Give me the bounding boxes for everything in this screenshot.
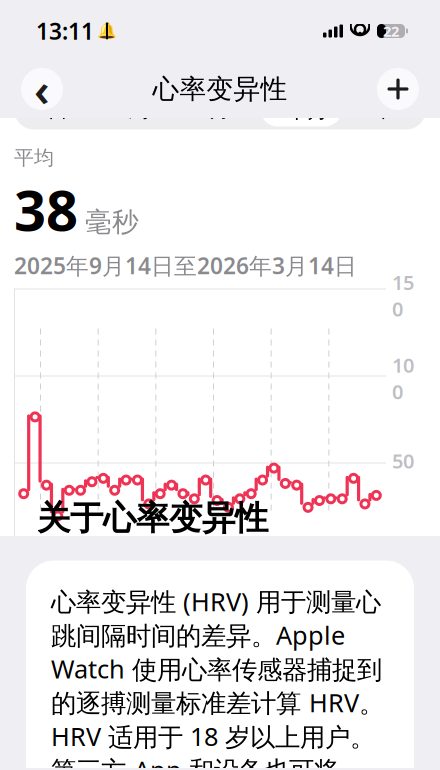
staticText: 12月 [157, 552, 199, 579]
staticText: ‹ [34, 59, 50, 119]
button[interactable]: 返回 [21, 68, 63, 110]
button[interactable]: 添加数据 [377, 68, 419, 110]
staticText: 22 [383, 21, 399, 41]
staticText: 毫秒 [85, 206, 139, 238]
staticText: 心率变异性 (HRV) 用于测量心跳间隔时间的差异。Apple Watch 使用… [51, 584, 384, 770]
staticText: 50 [392, 448, 414, 474]
staticText: 平均 [14, 145, 54, 170]
staticText: 年 [372, 96, 393, 123]
staticText: 0 [392, 530, 403, 557]
staticText: 日 [47, 96, 68, 123]
staticText: 1月 [214, 552, 245, 579]
staticText: 关于心率变异性 [37, 498, 268, 538]
staticText: 11月 [99, 552, 141, 579]
staticText: 100 [392, 352, 414, 405]
button[interactable]: 月 [179, 92, 261, 126]
staticText: 150 [392, 269, 414, 322]
staticText: 10月 [42, 552, 84, 579]
staticText: 心率变异性 [152, 73, 287, 105]
staticText: 2025年9月14日至2026年3月14日 [14, 250, 357, 280]
staticText: 38 [14, 172, 78, 246]
staticText: 13:11 [36, 16, 94, 46]
staticText: 周 [128, 96, 149, 123]
staticText: 🔔 [97, 22, 117, 40]
staticText: 6个月 [274, 95, 328, 124]
button[interactable]: 6个月 [261, 92, 342, 126]
button[interactable]: 周 [98, 92, 179, 126]
staticText: 月 [209, 96, 230, 123]
button[interactable]: 日 [17, 92, 98, 126]
button[interactable]: 年 [342, 92, 423, 126]
staticText: 2月 [271, 552, 302, 579]
staticText: 3月 [329, 552, 360, 579]
